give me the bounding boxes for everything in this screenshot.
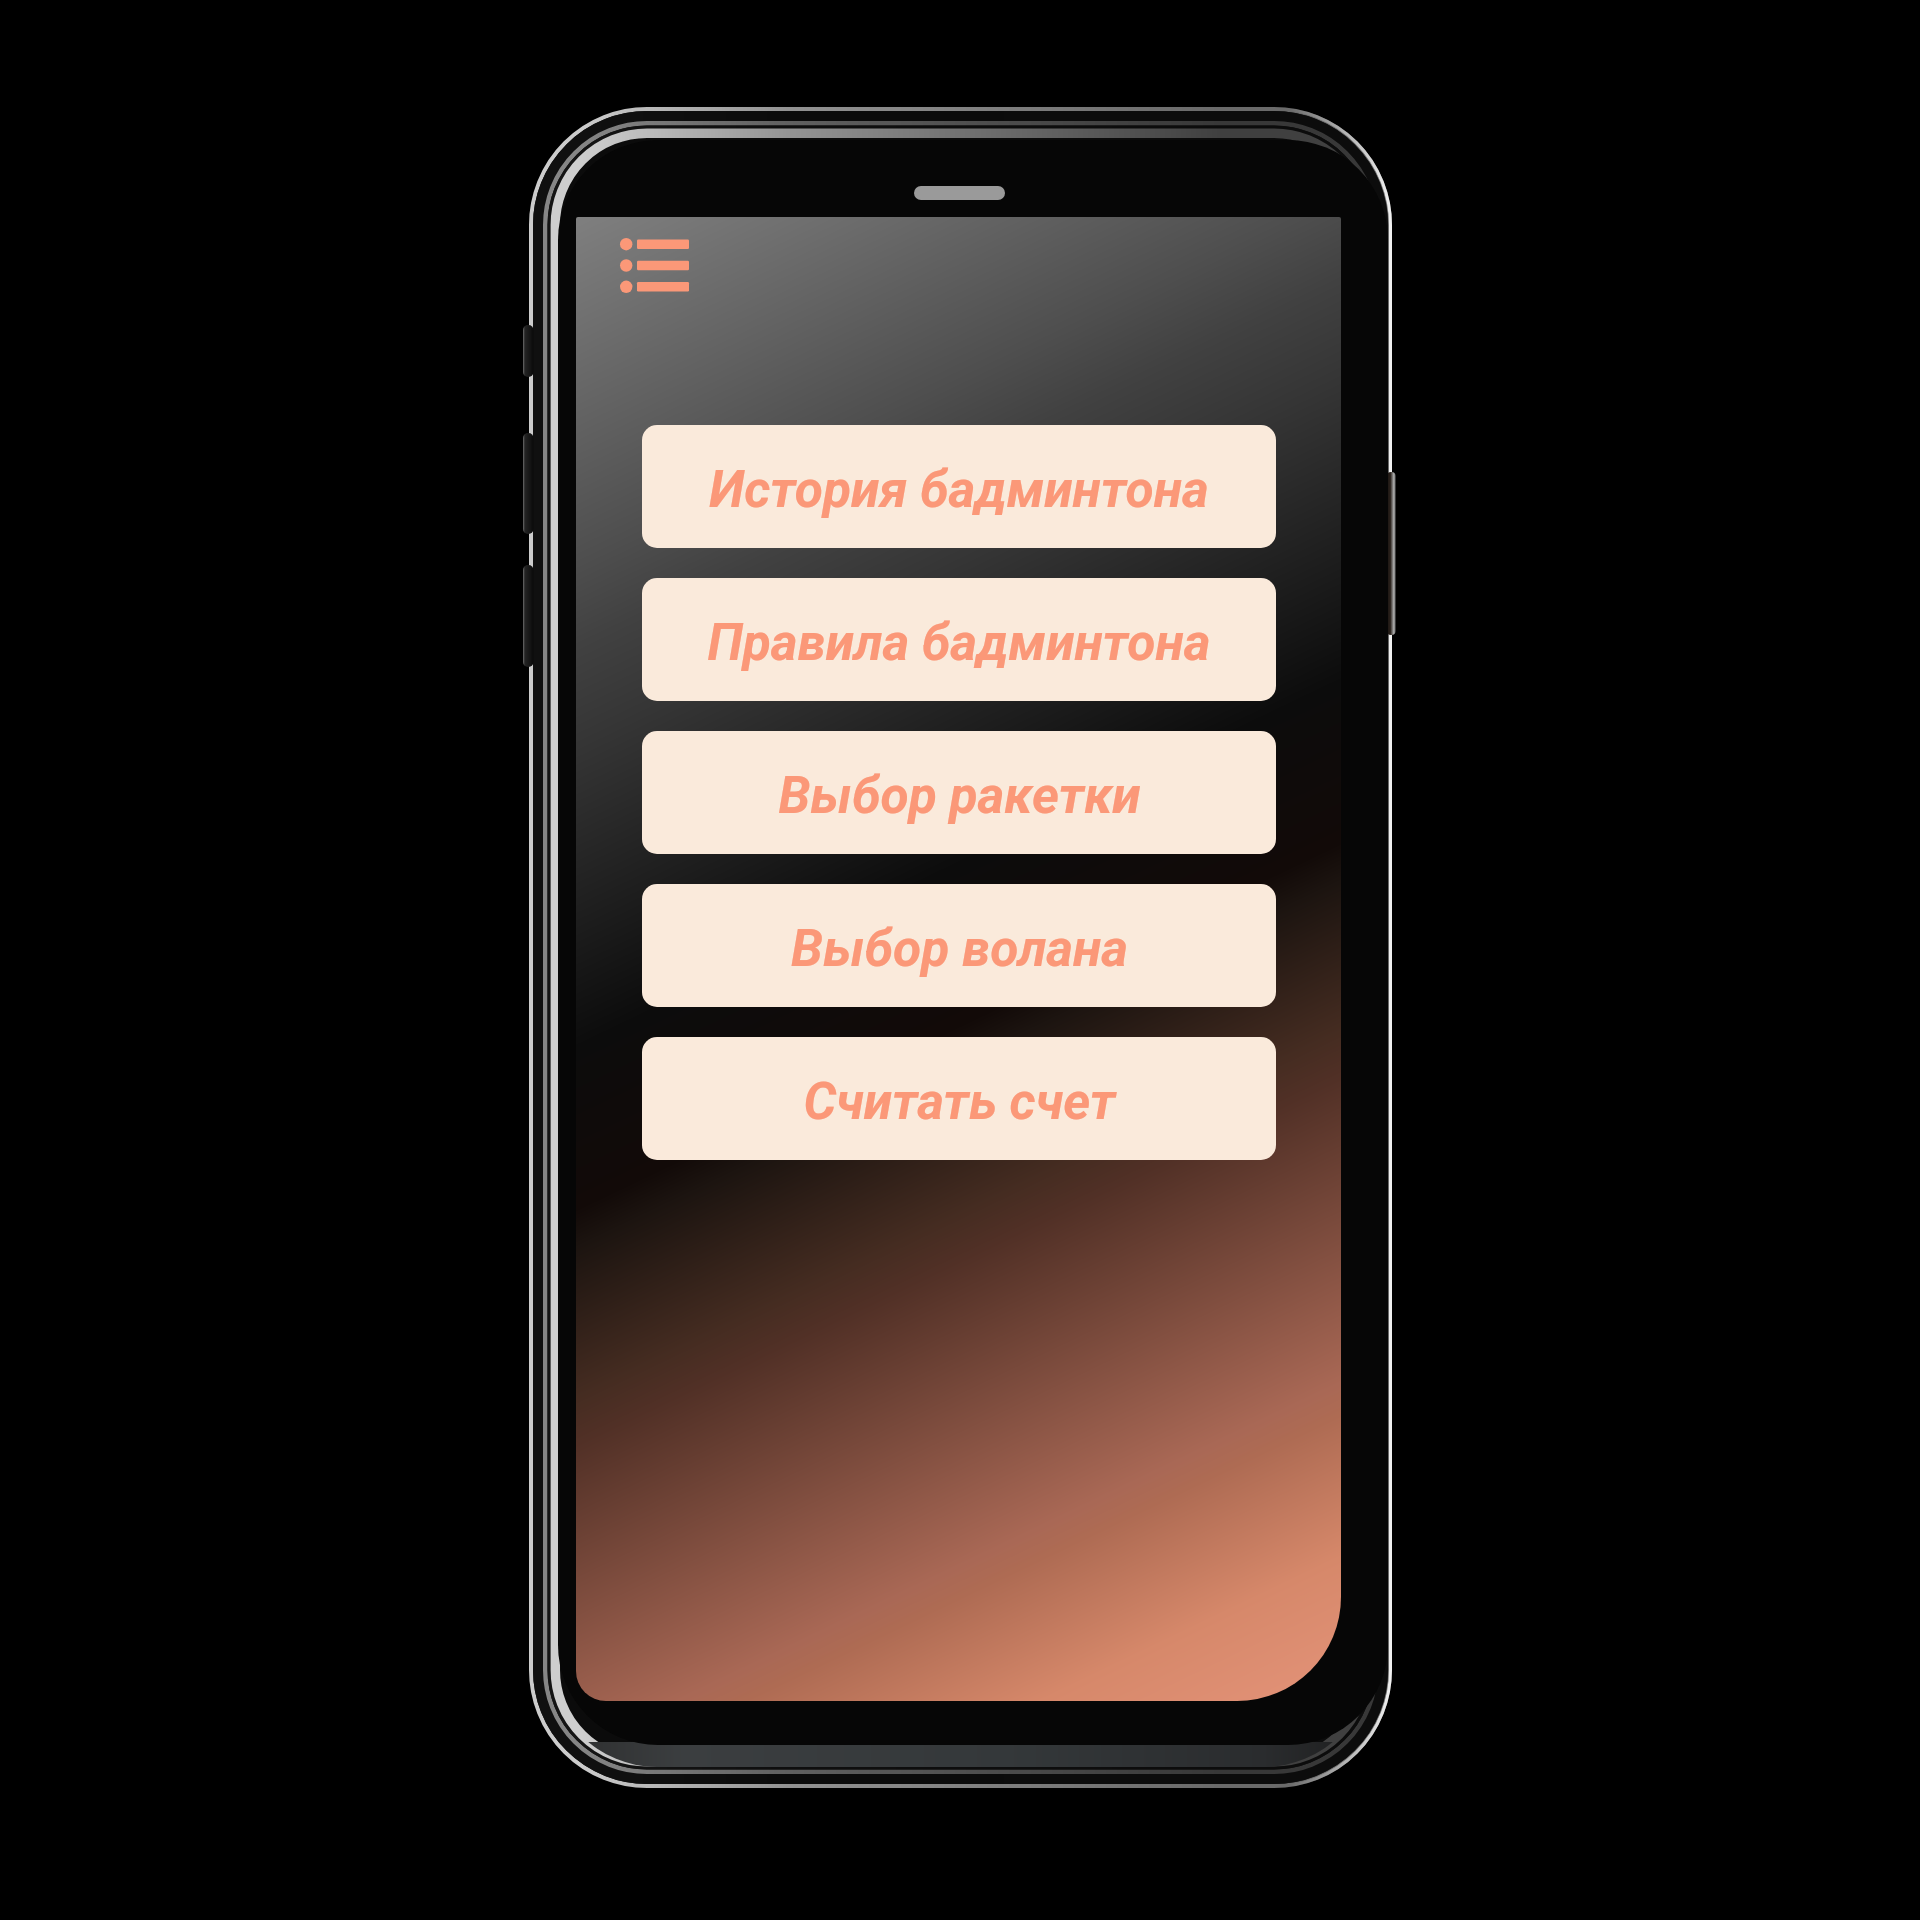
staticText: Выбор ракетки xyxy=(778,765,1141,825)
button[interactable]: Menu xyxy=(612,229,704,317)
staticText: История бадминтона xyxy=(709,459,1209,519)
staticText: Считать счет xyxy=(803,1071,1116,1131)
staticText: Выбор волана xyxy=(791,918,1128,978)
staticText: Правила бадминтона xyxy=(707,612,1211,672)
button[interactable]: Правила бадминтона xyxy=(642,578,1276,701)
button[interactable]: Выбор ракетки xyxy=(642,731,1276,854)
button[interactable]: История бадминтона xyxy=(642,425,1276,548)
button[interactable]: Выбор волана xyxy=(642,884,1276,1007)
button[interactable]: Считать счет xyxy=(642,1037,1276,1160)
